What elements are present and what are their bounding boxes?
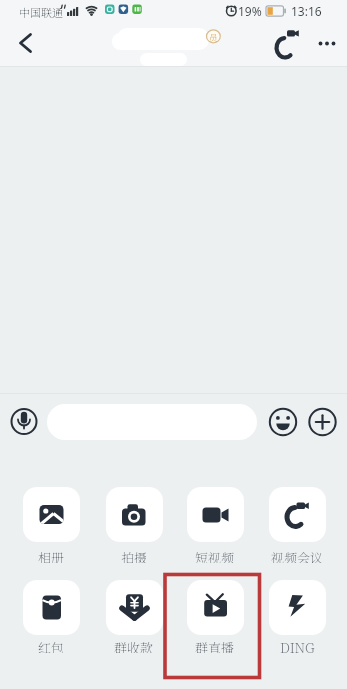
button[interactable] <box>269 580 326 635</box>
staticText: 员 <box>209 31 218 43</box>
button[interactable] <box>187 580 244 635</box>
button[interactable] <box>106 487 163 542</box>
button[interactable] <box>23 487 80 542</box>
button[interactable] <box>187 487 244 542</box>
staticText: 短视频 <box>195 548 235 563</box>
staticText: 拍摄 <box>121 548 148 563</box>
staticText: 13:16 <box>291 3 322 19</box>
button[interactable] <box>307 407 337 437</box>
staticText: 19% <box>238 3 262 19</box>
button[interactable] <box>268 407 298 437</box>
staticText: 群收款 <box>114 638 154 653</box>
button[interactable] <box>23 580 80 635</box>
button[interactable] <box>9 407 39 437</box>
staticText: 群直播 <box>195 638 235 653</box>
staticText: 红包 <box>38 638 65 653</box>
button[interactable] <box>269 487 326 542</box>
staticText: DING <box>280 638 315 653</box>
button[interactable] <box>8 26 44 62</box>
staticText: 视频会议 <box>271 548 324 563</box>
button[interactable] <box>106 580 163 635</box>
button[interactable] <box>270 28 302 60</box>
button[interactable] <box>47 404 257 440</box>
staticText: 中国联通 <box>19 4 63 20</box>
staticText: 相册 <box>38 548 65 563</box>
button[interactable] <box>312 32 340 56</box>
